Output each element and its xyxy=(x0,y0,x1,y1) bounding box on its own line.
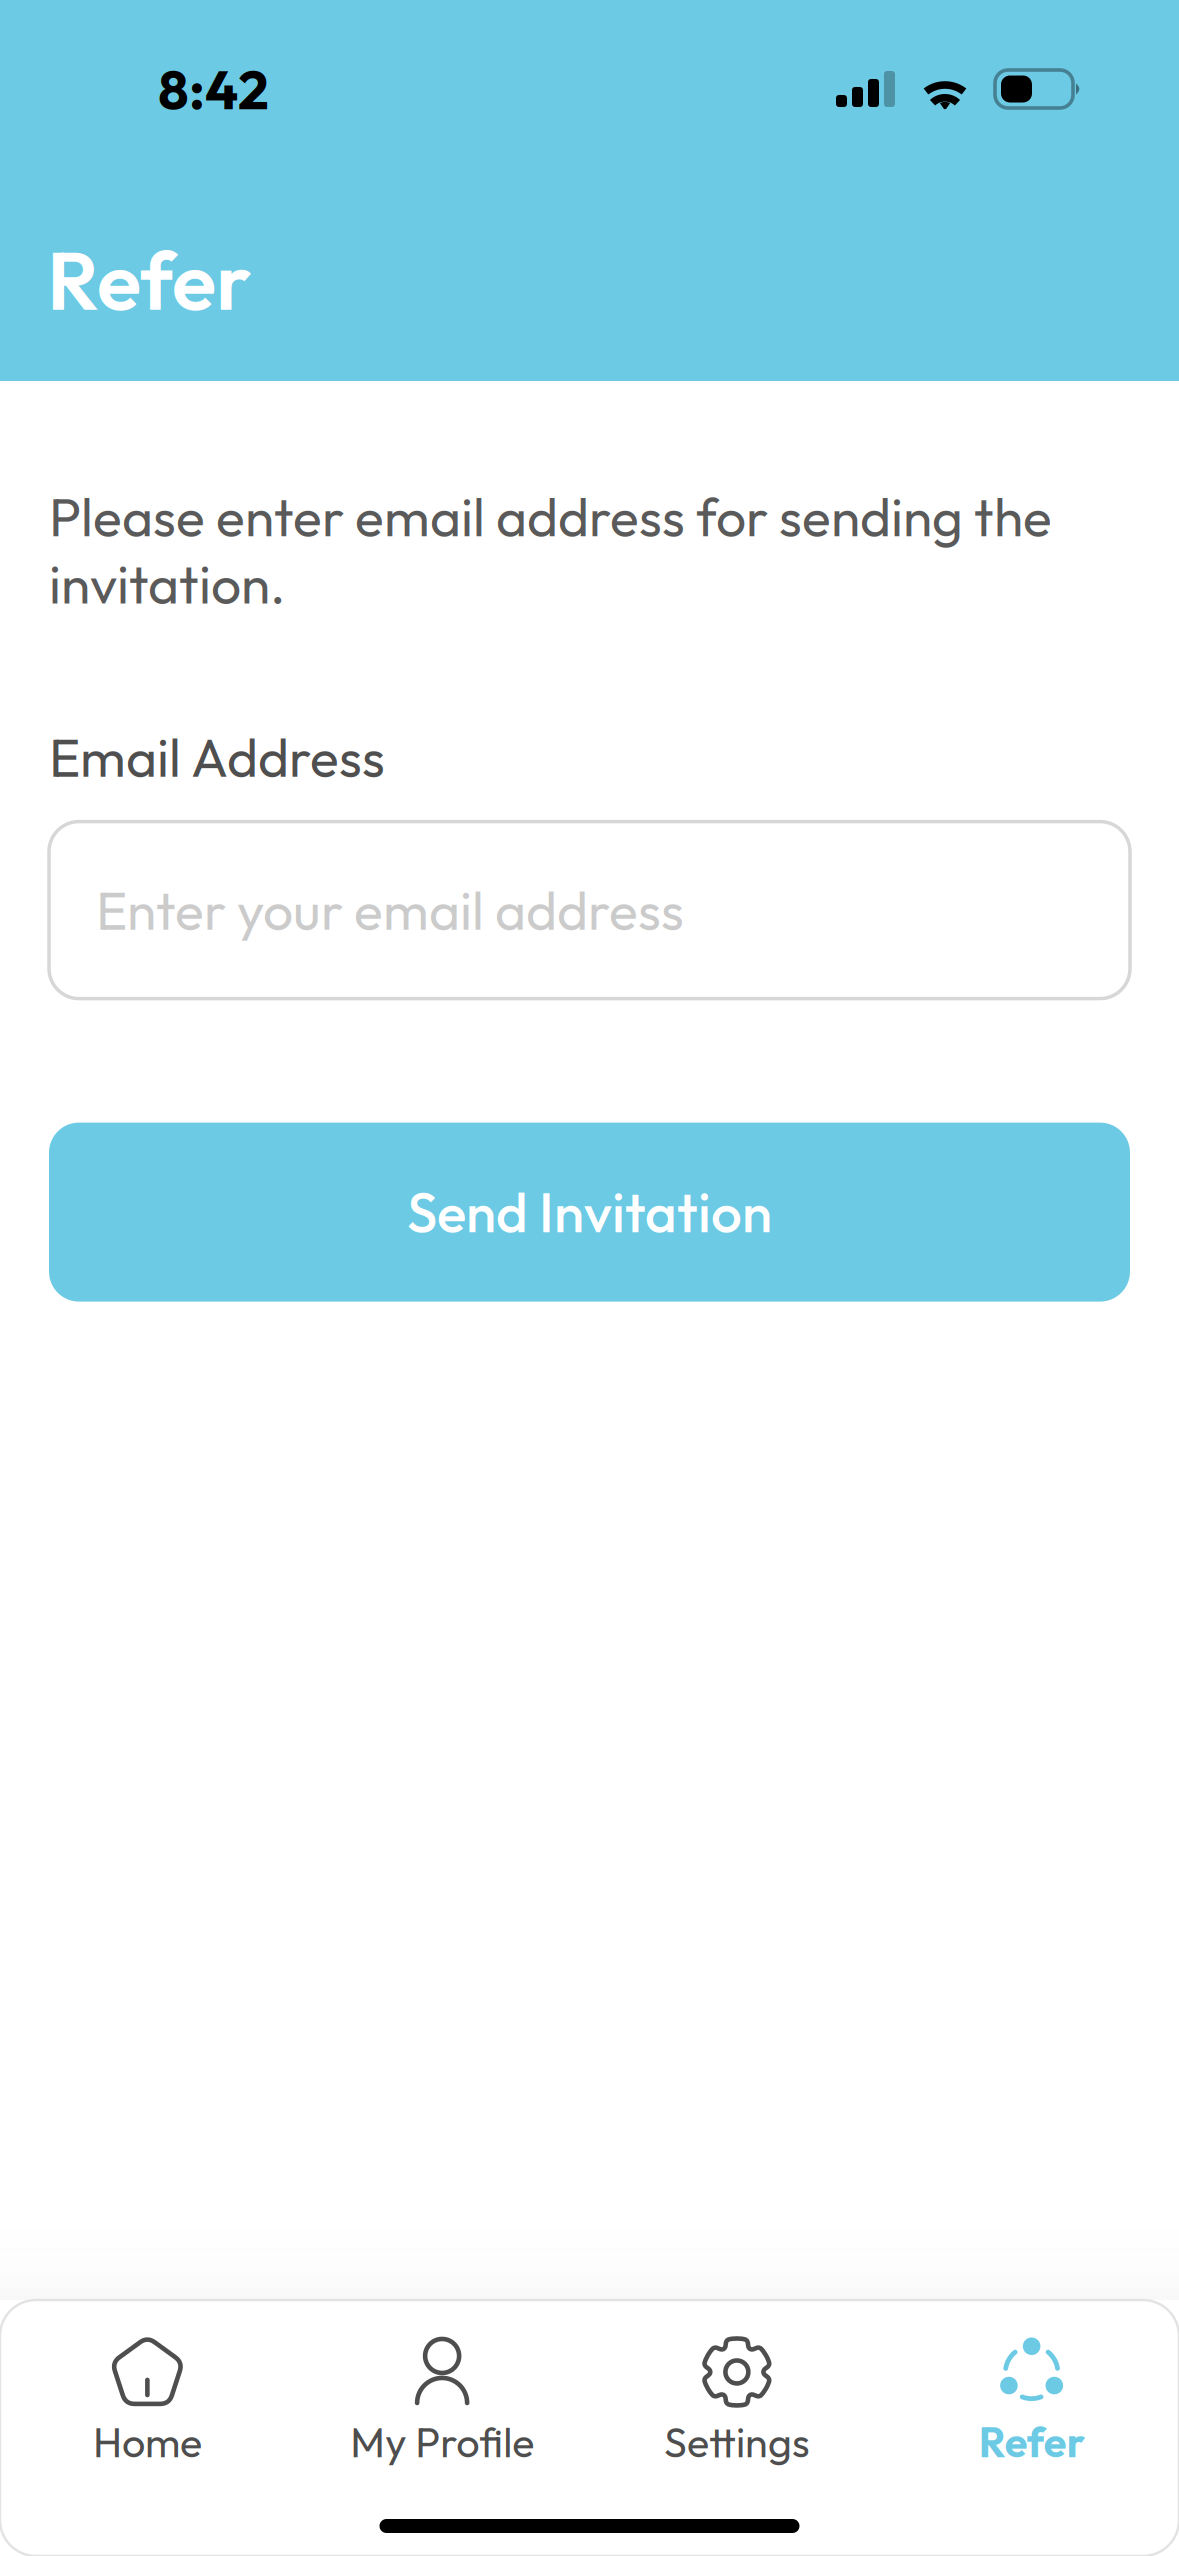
staticText: Refer xyxy=(979,2416,1085,2468)
staticText: Send Invitation xyxy=(407,1178,772,1247)
button[interactable]: Refer xyxy=(884,2314,1179,2484)
staticText: Refer xyxy=(47,228,251,331)
button[interactable]: Settings xyxy=(589,2314,884,2484)
staticText: My Profile xyxy=(350,2416,534,2468)
staticText: Home xyxy=(93,2416,202,2468)
button[interactable]: Send Invitation xyxy=(49,1123,1130,1302)
staticText: Enter your email address xyxy=(96,876,684,944)
staticText: Settings xyxy=(664,2416,810,2468)
staticText: Please enter email address for sending t… xyxy=(49,483,1052,617)
staticText: 8:42 xyxy=(158,55,269,123)
button[interactable]: My Profile xyxy=(295,2314,590,2484)
staticText: Email Address xyxy=(49,723,385,791)
button[interactable]: Home xyxy=(0,2314,295,2484)
